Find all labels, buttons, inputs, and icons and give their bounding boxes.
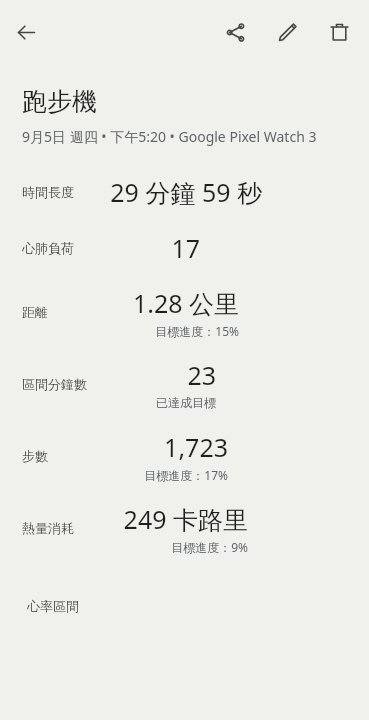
- staticText: 心肺負荷: [22, 240, 74, 256]
- staticText: 17: [171, 231, 200, 265]
- staticText: 目標進度：15%: [155, 323, 239, 339]
- button[interactable]: 區間分鐘數: [0, 348, 369, 420]
- staticText: 目標進度：17%: [144, 467, 228, 483]
- button[interactable]: 時間長度: [0, 164, 369, 220]
- staticText: 1,723: [164, 430, 228, 464]
- staticText: 時間長度: [22, 184, 74, 200]
- staticText: 9月5日 週四 • 下午5:20 • Google Pixel Watch 3: [22, 127, 317, 146]
- button[interactable]: 心肺負荷: [0, 220, 369, 276]
- staticText: 249 卡路里: [123, 502, 248, 536]
- button[interactable]: Share: [211, 8, 259, 56]
- staticText: 已達成目標: [156, 395, 216, 410]
- staticText: 1.28 公里: [132, 286, 239, 320]
- button[interactable]: Delete: [315, 8, 363, 56]
- staticText: 區間分鐘數: [22, 376, 87, 392]
- button[interactable]: 距離: [0, 276, 369, 348]
- button[interactable]: Edit: [263, 8, 311, 56]
- button[interactable]: 心率區間: [0, 584, 369, 628]
- button[interactable]: 熱量消耗: [0, 492, 369, 564]
- staticText: 心率區間: [27, 598, 79, 614]
- staticText: 23: [187, 358, 216, 392]
- staticText: 跑步機: [22, 86, 97, 117]
- staticText: 29 分鐘 59 秒: [110, 175, 262, 209]
- staticText: 熱量消耗: [22, 520, 74, 536]
- button[interactable]: Back: [2, 8, 50, 56]
- staticText: 步數: [22, 448, 48, 464]
- button[interactable]: 步數: [0, 420, 369, 492]
- staticText: 距離: [22, 304, 48, 320]
- staticText: 目標進度：9%: [171, 539, 248, 555]
